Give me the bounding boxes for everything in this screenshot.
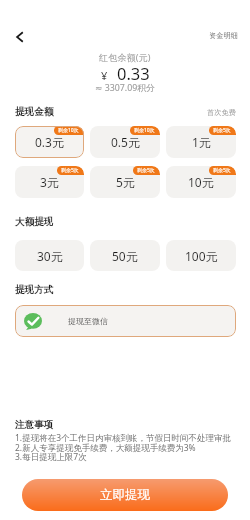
staticText: 剩余5次 xyxy=(61,167,79,174)
staticText: 提现方式 xyxy=(15,284,54,296)
staticText: 提现金额 xyxy=(15,106,54,118)
staticText: 剩余10次 xyxy=(58,127,79,134)
staticText: 立即提现 xyxy=(100,487,150,503)
button[interactable]: 3元 xyxy=(15,166,84,198)
staticText: 1.提现将在3个工作日内审核到账，节假日时间不处理审批 xyxy=(15,432,232,444)
staticText: 注意事项 xyxy=(15,419,54,431)
staticText: 1元 xyxy=(192,134,211,150)
staticText: 3元 xyxy=(40,174,59,190)
staticText: 提现至微信 xyxy=(68,316,108,326)
staticText: ≈ 3307.09积分 xyxy=(95,82,155,94)
button[interactable]: 立即提现 xyxy=(22,479,228,511)
staticText: ¥ xyxy=(101,68,108,83)
button[interactable]: 资金明细 xyxy=(197,27,250,44)
staticText: 0.5元 xyxy=(111,134,140,150)
staticText: 10元 xyxy=(188,174,214,190)
button[interactable]: 0.5元 xyxy=(90,126,160,158)
staticText: 30元 xyxy=(37,248,63,264)
staticText: 2.新人专享提现免手续费，大额提现手续费为3% xyxy=(15,442,196,454)
button[interactable]: 10元 xyxy=(166,166,236,198)
button[interactable]: 5元 xyxy=(90,166,160,198)
staticText: 剩余5次 xyxy=(137,167,155,174)
staticText: 50元 xyxy=(112,248,138,264)
staticText: 100元 xyxy=(185,248,218,264)
staticText: 5元 xyxy=(116,174,135,190)
staticText: 剩余5次 xyxy=(213,167,231,174)
staticText: 剩余10次 xyxy=(134,127,155,134)
staticText: 大额提现 xyxy=(15,216,54,228)
button[interactable]: 100元 xyxy=(166,240,236,271)
staticText: 首次免费 xyxy=(207,108,236,117)
staticText: 红包余额(元) xyxy=(99,51,151,64)
staticText: 资金明细 xyxy=(209,31,238,40)
button[interactable]: 30元 xyxy=(15,240,84,271)
button[interactable]: 提现至微信 xyxy=(15,305,236,337)
button[interactable]: Back xyxy=(7,24,33,50)
staticText: 0.33 xyxy=(117,62,150,84)
button[interactable]: 1元 xyxy=(166,126,236,158)
staticText: 3.每日提现上限7次 xyxy=(15,451,87,463)
button[interactable]: 50元 xyxy=(90,240,160,271)
staticText: 剩余5次 xyxy=(213,127,231,134)
button[interactable]: 0.3元 xyxy=(15,126,84,158)
staticText: 0.3元 xyxy=(35,134,64,150)
